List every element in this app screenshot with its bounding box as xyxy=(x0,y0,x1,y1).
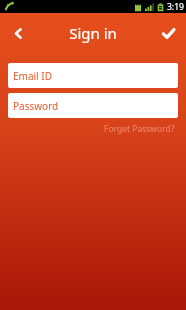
staticText: Forget Password? xyxy=(104,123,175,135)
button[interactable]: Forget Password? xyxy=(102,121,177,137)
staticText: Email ID xyxy=(13,69,52,83)
button[interactable]: Email ID xyxy=(8,63,178,88)
button[interactable]: Back xyxy=(0,15,36,51)
button[interactable]: Password xyxy=(8,93,178,118)
button[interactable]: Confirm sign in xyxy=(150,15,186,51)
staticText: 3:19 xyxy=(167,1,184,13)
staticText: Sign in xyxy=(69,23,117,43)
staticText: Password xyxy=(13,99,59,113)
